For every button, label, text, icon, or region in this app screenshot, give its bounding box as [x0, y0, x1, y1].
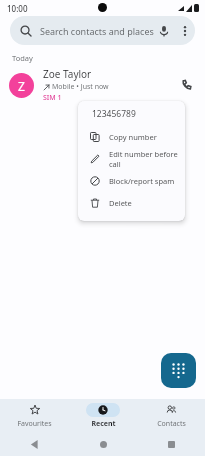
button[interactable]: Recent [69, 399, 137, 432]
staticText: Zoe Taylor [43, 67, 92, 81]
staticText: Block/report spam [109, 176, 175, 186]
button[interactable]: Home [69, 432, 137, 456]
staticText: Today [12, 53, 33, 63]
button[interactable]: Favourites [0, 399, 69, 432]
staticText: Favourites [17, 419, 52, 429]
staticText: Copy number [109, 132, 157, 142]
button[interactable]: Delete [78, 192, 185, 214]
button[interactable]: Copy number [78, 126, 185, 148]
staticText: Recent [91, 419, 116, 429]
staticText: SIM 1 [43, 93, 62, 103]
staticText: Mobile • Just now [52, 82, 109, 92]
staticText: Delete [109, 198, 132, 208]
staticText: Edit number before call [109, 149, 185, 169]
button[interactable]: Dialpad [161, 353, 196, 388]
button[interactable]: More options [174, 20, 195, 42]
button[interactable]: Back [0, 432, 69, 456]
staticText: 123456789 [92, 108, 136, 120]
staticText: Search contacts and places [40, 25, 154, 37]
button[interactable]: Recents [137, 432, 205, 456]
button[interactable]: Contacts [137, 399, 205, 432]
button[interactable]: Block/report spam [78, 170, 185, 192]
button[interactable]: Edit number before call [78, 148, 185, 170]
button[interactable]: Search contacts and places [10, 16, 195, 45]
staticText: Z [18, 78, 25, 94]
button[interactable]: Call Zoe Taylor [174, 72, 200, 98]
button[interactable]: Z [0, 65, 205, 105]
staticText: Contacts [157, 419, 186, 429]
staticText: 10:00 [7, 3, 28, 14]
button[interactable]: Voice search [154, 21, 174, 41]
